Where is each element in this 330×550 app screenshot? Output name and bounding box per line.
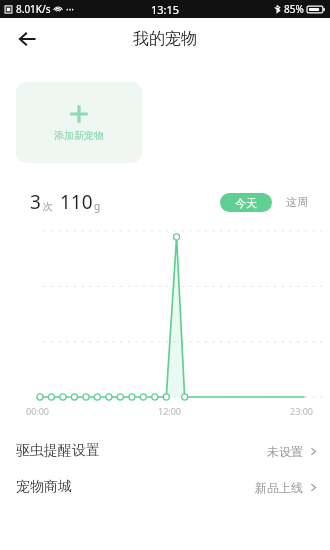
staticText: 次: [43, 200, 53, 213]
button[interactable]: 今天: [220, 193, 272, 212]
staticText: 这周: [286, 195, 308, 209]
staticText: 00:00: [26, 405, 50, 417]
staticText: 我的宠物: [133, 29, 197, 49]
staticText: 110: [60, 189, 93, 215]
staticText: 12:00: [158, 405, 182, 417]
staticText: g: [94, 199, 101, 213]
staticText: 8.01K/s: [16, 2, 51, 16]
staticText: 85%: [284, 2, 304, 16]
staticText: 宠物商城: [16, 478, 72, 496]
staticText: 今天: [235, 196, 257, 210]
staticText: 新品上线: [255, 480, 303, 495]
button[interactable]: 添加新宠物: [16, 82, 142, 163]
staticText: 未设置: [267, 444, 303, 459]
staticText: 驱虫提醒设置: [16, 442, 100, 460]
button[interactable]: 驱虫提醒设置: [0, 433, 330, 469]
staticText: 添加新宠物: [54, 129, 104, 142]
staticText: 13:15: [151, 2, 180, 17]
staticText: 23:00: [290, 405, 314, 417]
button[interactable]: 宠物商城: [0, 469, 330, 505]
button[interactable]: Back: [10, 22, 44, 56]
button[interactable]: 这周: [284, 192, 310, 212]
staticText: 3: [30, 189, 41, 215]
staticText: ···: [66, 2, 75, 16]
